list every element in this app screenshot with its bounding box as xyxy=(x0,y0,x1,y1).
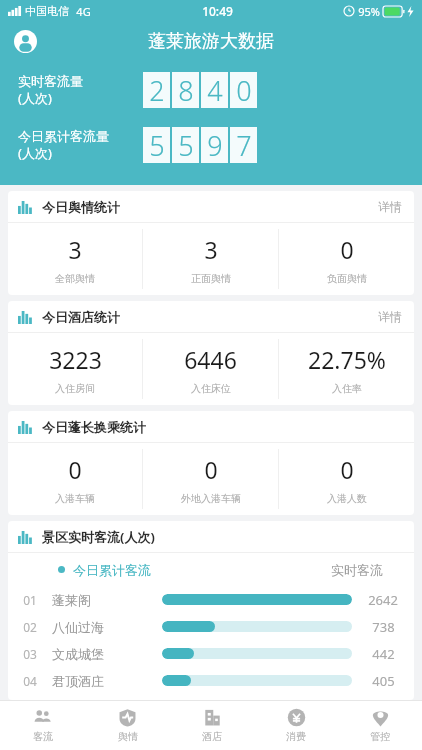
button[interactable]: 管控 xyxy=(338,701,422,750)
button[interactable]: 详情 xyxy=(366,191,414,222)
staticText: 01 xyxy=(23,592,37,608)
staticText: 0 xyxy=(68,454,82,485)
staticText: 442 xyxy=(372,645,395,663)
staticText: 10:49 xyxy=(202,3,233,19)
staticText: 入港人数 xyxy=(327,492,367,505)
staticText: 2642 xyxy=(368,591,398,609)
staticText: 消费 xyxy=(286,730,306,743)
staticText: 八仙过海 xyxy=(52,619,104,635)
button[interactable]: 3223 xyxy=(8,333,142,405)
button[interactable]: Profile xyxy=(8,24,42,58)
staticText: 管控 xyxy=(370,730,390,743)
staticText: 酒店 xyxy=(202,730,222,743)
button[interactable]: 04 xyxy=(8,667,414,694)
staticText: 中国电信 xyxy=(25,4,69,18)
staticText: (人次) xyxy=(18,144,52,162)
staticText: 2 xyxy=(149,72,165,108)
staticText: 正面舆情 xyxy=(191,272,231,285)
button[interactable]: 0 xyxy=(8,443,142,515)
staticText: 7 xyxy=(236,127,252,163)
staticText: 外地入港车辆 xyxy=(181,492,241,505)
button[interactable]: 0 xyxy=(143,443,278,515)
staticText: 蓬莱阁 xyxy=(52,592,91,608)
button[interactable]: 03 xyxy=(8,640,414,667)
staticText: 景区实时客流(人次) xyxy=(42,528,155,546)
staticText: 3 xyxy=(204,234,218,265)
staticText: 22.75% xyxy=(308,344,386,375)
button[interactable]: 0 xyxy=(279,223,414,295)
staticText: 实时客流 xyxy=(331,562,383,578)
staticText: 5 xyxy=(149,127,165,163)
staticText: 02 xyxy=(23,619,37,635)
staticText: 405 xyxy=(372,672,395,690)
button[interactable]: 22.75% xyxy=(279,333,414,405)
staticText: 3223 xyxy=(49,344,102,375)
staticText: 4 xyxy=(207,72,223,108)
staticText: 今日蓬长换乘统计 xyxy=(42,419,146,435)
staticText: 入港车辆 xyxy=(55,492,95,505)
staticText: 入住率 xyxy=(332,382,362,395)
staticText: 入住房间 xyxy=(55,382,95,395)
button[interactable]: 客流 xyxy=(0,701,85,750)
staticText: 95% xyxy=(358,4,380,19)
button[interactable]: 舆情 xyxy=(85,701,170,750)
staticText: 738 xyxy=(372,618,395,636)
button[interactable]: 3 xyxy=(143,223,278,295)
staticText: 今日舆情统计 xyxy=(42,199,120,215)
staticText: 客流 xyxy=(33,730,53,743)
staticText: 今日累计客流 xyxy=(73,562,151,578)
staticText: 舆情 xyxy=(118,730,138,743)
staticText: 03 xyxy=(23,646,37,662)
staticText: 今日累计客流量 xyxy=(18,128,109,144)
staticText: 蓬莱旅游大数据 xyxy=(148,30,274,53)
staticText: 负面舆情 xyxy=(327,272,367,285)
staticText: 详情 xyxy=(378,199,402,214)
button[interactable]: 消费 xyxy=(254,701,338,750)
staticText: 8 xyxy=(178,72,194,108)
staticText: 入住床位 xyxy=(191,382,231,395)
staticText: 实时客流量 xyxy=(18,73,83,89)
button[interactable]: 01 xyxy=(8,586,414,613)
staticText: 0 xyxy=(340,234,354,265)
staticText: 君顶酒庄 xyxy=(52,673,104,689)
staticText: 9 xyxy=(207,127,223,163)
staticText: 0 xyxy=(340,454,354,485)
staticText: 4G xyxy=(76,4,91,19)
staticText: 详情 xyxy=(378,309,402,324)
staticText: 3 xyxy=(68,234,82,265)
staticText: 6446 xyxy=(184,344,237,375)
staticText: 04 xyxy=(23,673,37,689)
staticText: 文成城堡 xyxy=(52,646,104,662)
button[interactable]: 酒店 xyxy=(170,701,254,750)
button[interactable]: 0 xyxy=(279,443,414,515)
staticText: 5 xyxy=(178,127,194,163)
staticText: 全部舆情 xyxy=(55,272,95,285)
staticText: 0 xyxy=(236,72,252,108)
button[interactable]: 02 xyxy=(8,613,414,640)
staticText: 今日酒店统计 xyxy=(42,309,120,325)
button[interactable]: 3 xyxy=(8,223,142,295)
staticText: 0 xyxy=(204,454,218,485)
button[interactable]: 详情 xyxy=(366,301,414,332)
button[interactable]: 6446 xyxy=(143,333,278,405)
staticText: (人次) xyxy=(18,89,52,107)
